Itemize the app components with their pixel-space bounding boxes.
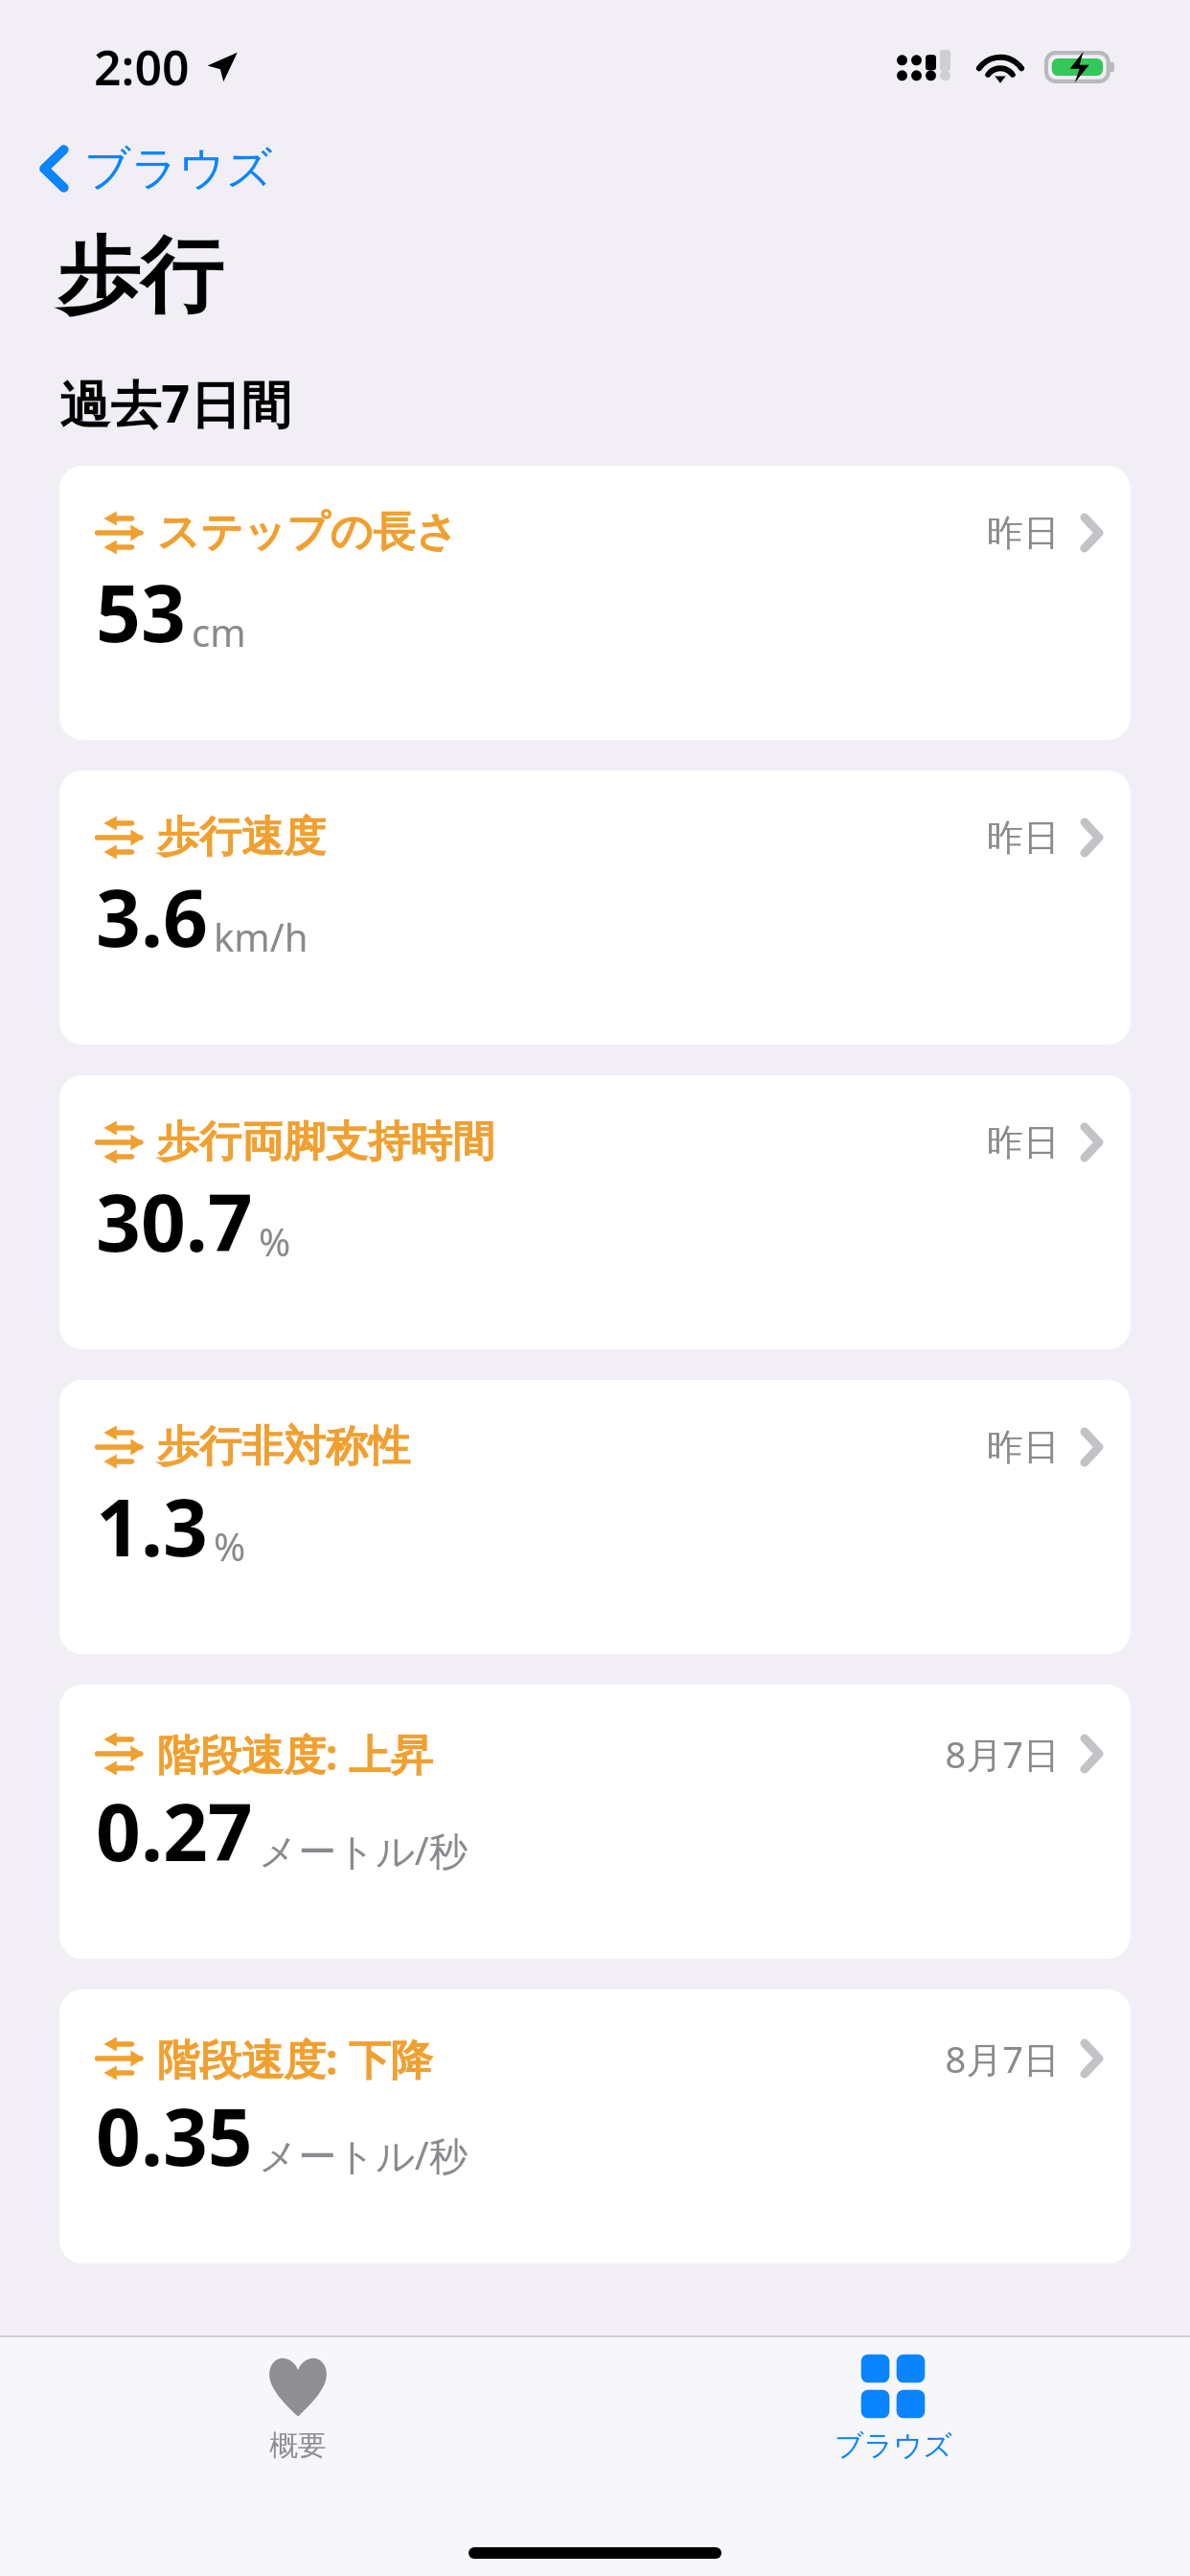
staticText: 歩行速度	[157, 811, 326, 863]
staticText: 昨日	[987, 815, 1060, 861]
other: Walking metric	[96, 1423, 146, 1471]
staticText: 歩行非対称性	[157, 1420, 410, 1473]
staticText: 歩行両脚支持時間	[157, 1115, 494, 1168]
staticText: 1.3	[96, 1472, 208, 1579]
staticText: %	[259, 1215, 291, 1267]
staticText: ブラウズ	[835, 2427, 952, 2464]
button[interactable]: 概要	[183, 2337, 413, 2473]
staticText: 歩行	[57, 224, 222, 328]
button[interactable]: Walking metric	[59, 1380, 1131, 1654]
staticText: 8月7日	[945, 1729, 1060, 1779]
staticText: メートル/秒	[259, 1824, 468, 1876]
staticText: 階段速度: 上昇	[157, 1725, 433, 1782]
staticText: 2:00	[94, 34, 190, 100]
staticText: 8月7日	[945, 2034, 1060, 2083]
staticText: 3.6	[96, 862, 208, 970]
staticText: 概要	[269, 2427, 327, 2464]
staticText: 過去7日間	[59, 368, 292, 437]
other: Walking metric	[96, 1118, 146, 1166]
other: Walking metric	[96, 509, 146, 557]
staticText: メートル/秒	[259, 2128, 468, 2181]
button[interactable]: Walking metric	[59, 466, 1131, 740]
button[interactable]: Walking metric	[59, 1685, 1131, 1959]
staticText: 昨日	[987, 1424, 1060, 1470]
staticText: 53	[96, 558, 186, 665]
button[interactable]: ブラウズ	[778, 2337, 1008, 2473]
staticText: %	[214, 1520, 246, 1572]
other: Walking metric	[96, 1730, 146, 1778]
button[interactable]: Walking metric	[59, 770, 1131, 1045]
other: Walking metric	[96, 814, 146, 862]
staticText: 昨日	[987, 1119, 1060, 1165]
button[interactable]: Walking metric	[59, 1989, 1131, 2264]
staticText: 30.7	[96, 1167, 253, 1275]
other: Walking metric	[96, 2035, 146, 2082]
staticText: 昨日	[987, 510, 1060, 556]
staticText: 0.27	[96, 1777, 253, 1884]
staticText: cm	[192, 606, 246, 657]
staticText: 0.35	[96, 2081, 253, 2189]
staticText: ステップの長さ	[157, 506, 459, 559]
button[interactable]: ブラウズ	[33, 134, 281, 203]
staticText: 階段速度: 下降	[157, 2030, 433, 2087]
staticText: km/h	[214, 910, 309, 962]
staticText: ブラウズ	[84, 140, 273, 197]
button[interactable]: Walking metric	[59, 1075, 1131, 1349]
